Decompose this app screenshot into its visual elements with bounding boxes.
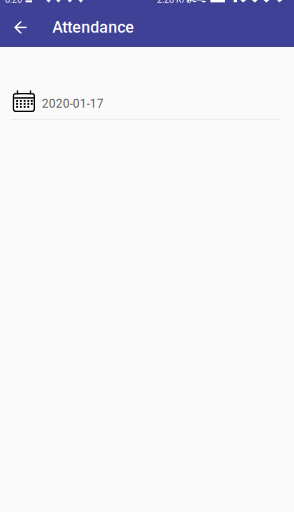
button[interactable]: 2020-01-17	[0, 47, 294, 120]
staticText: 2.28 K/S	[157, 0, 191, 5]
button[interactable]: Back	[7, 10, 33, 45]
staticText: 2020-01-17	[42, 97, 104, 111]
staticText: 8:26	[5, 0, 22, 5]
staticText: Attendance	[52, 18, 134, 37]
